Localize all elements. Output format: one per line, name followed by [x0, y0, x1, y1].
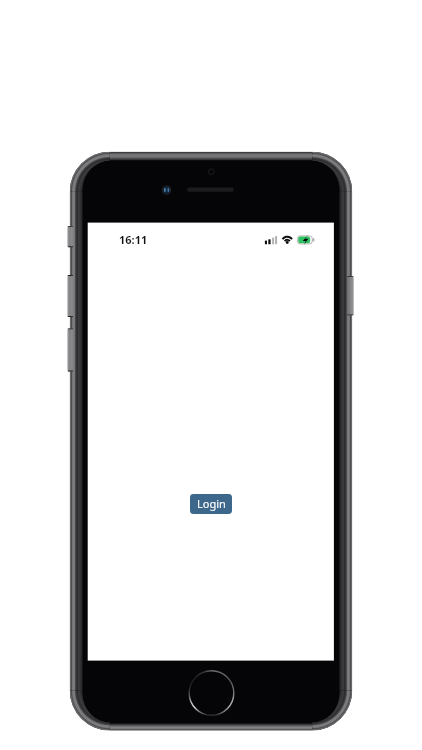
staticText: 16:11: [119, 232, 148, 247]
staticText: Login: [197, 496, 226, 511]
button[interactable]: Login: [190, 494, 232, 514]
